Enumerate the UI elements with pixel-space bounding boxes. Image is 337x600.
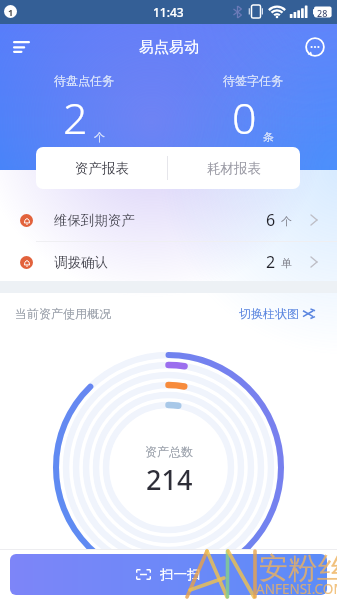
staticText: 扫一扫 — [160, 566, 201, 583]
staticText: 调拨确认 — [54, 254, 108, 271]
staticText: 2 — [63, 88, 88, 147]
button[interactable]: 待签字任务 — [169, 70, 337, 140]
staticText: 6 — [266, 209, 276, 231]
staticText: 个 — [94, 130, 105, 144]
staticText: 11:43 — [153, 4, 184, 20]
staticText: 条 — [263, 130, 274, 144]
button[interactable]: Menu — [6, 32, 36, 62]
button[interactable]: 待盘点任务 — [0, 70, 168, 140]
staticText: 资产总数 — [145, 444, 193, 459]
staticText: 安粉丝 — [259, 550, 337, 587]
button[interactable]: 维保到期资产 — [0, 199, 337, 241]
staticText: 28 — [317, 7, 328, 19]
staticText: 待签字任务 — [223, 73, 283, 88]
staticText: 个 — [281, 214, 292, 228]
staticText: 易点易动 — [139, 38, 199, 57]
staticText: 当前资产使用概况 — [15, 306, 111, 321]
staticText: 0 — [232, 88, 257, 147]
staticText: 维保到期资产 — [54, 212, 135, 229]
staticText: 1 — [8, 6, 14, 18]
staticText: 单 — [281, 256, 292, 270]
staticText: 214 — [146, 461, 193, 498]
staticText: 2 — [266, 251, 276, 273]
button[interactable]: 扫一扫 — [10, 554, 327, 595]
staticText: 切换柱状图 — [239, 306, 299, 321]
button[interactable]: 调拨确认 — [0, 241, 337, 283]
button[interactable]: 耗材报表 — [168, 147, 300, 189]
staticText: 待盘点任务 — [54, 73, 114, 88]
staticText: 耗材报表 — [207, 160, 261, 177]
button[interactable]: Messages — [300, 32, 330, 62]
button[interactable]: 资产报表 — [36, 147, 167, 189]
staticText: ANFENSI.COM — [256, 580, 337, 598]
button[interactable]: 切换柱状图 — [239, 306, 315, 321]
staticText: 资产报表 — [75, 160, 129, 177]
